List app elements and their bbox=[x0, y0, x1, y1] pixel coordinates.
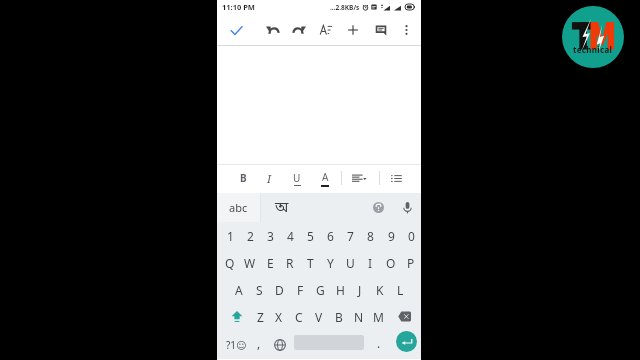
button[interactable]: P bbox=[401, 249, 421, 276]
button[interactable]: 7 bbox=[340, 222, 360, 249]
button[interactable]: Voice input bbox=[397, 193, 417, 222]
button[interactable]: 5 bbox=[300, 222, 320, 249]
staticText: Q bbox=[225, 255, 235, 271]
button[interactable]: 4 bbox=[280, 222, 300, 249]
staticText: 0 bbox=[408, 228, 415, 244]
button[interactable]: . bbox=[370, 330, 388, 359]
staticText: ?1☺ bbox=[226, 338, 247, 352]
button[interactable]: 0 bbox=[401, 222, 421, 249]
staticText: O bbox=[386, 255, 396, 271]
button[interactable]: U bbox=[340, 249, 360, 276]
button[interactable]: M bbox=[368, 303, 388, 330]
button[interactable]: O bbox=[381, 249, 401, 276]
staticText: J bbox=[358, 282, 362, 298]
staticText: technical bbox=[573, 44, 613, 55]
button[interactable]: T bbox=[300, 249, 320, 276]
button[interactable]: S bbox=[249, 276, 269, 303]
button[interactable]: 9 bbox=[381, 222, 401, 249]
staticText: V bbox=[315, 309, 323, 325]
button[interactable]: অ bbox=[261, 193, 391, 222]
button[interactable]: Done bbox=[225, 19, 247, 41]
button[interactable]: D bbox=[269, 276, 289, 303]
staticText: R bbox=[286, 255, 294, 271]
button[interactable]: A bbox=[229, 276, 249, 303]
staticText: E bbox=[267, 255, 274, 271]
staticText: 8 bbox=[367, 228, 374, 244]
button[interactable]: R bbox=[280, 249, 300, 276]
staticText: X bbox=[275, 309, 283, 325]
button[interactable]: Underline bbox=[287, 168, 307, 188]
button[interactable]: 3 bbox=[260, 222, 280, 249]
button[interactable]: Text colour bbox=[315, 168, 335, 188]
button[interactable]: Backspace bbox=[391, 303, 417, 330]
staticText: B bbox=[240, 171, 247, 185]
button[interactable]: G bbox=[310, 276, 330, 303]
button[interactable]: B bbox=[329, 303, 349, 330]
button[interactable] bbox=[292, 328, 366, 357]
staticText: K bbox=[376, 282, 384, 298]
button[interactable]: H bbox=[330, 276, 350, 303]
button[interactable]: Redo bbox=[288, 19, 310, 41]
button[interactable]: , bbox=[250, 330, 268, 359]
button[interactable]: 6 bbox=[320, 222, 340, 249]
staticText: I bbox=[368, 255, 373, 271]
staticText: অ bbox=[275, 198, 289, 218]
staticText: 1 bbox=[227, 228, 234, 244]
staticText: Y bbox=[327, 255, 334, 271]
button[interactable]: Change language bbox=[271, 330, 289, 359]
staticText: L bbox=[397, 282, 404, 298]
button[interactable]: 2 bbox=[240, 222, 260, 249]
staticText: 6 bbox=[327, 228, 334, 244]
button[interactable]: F bbox=[290, 276, 310, 303]
button[interactable]: N bbox=[349, 303, 369, 330]
button[interactable]: E bbox=[260, 249, 280, 276]
staticText: C bbox=[295, 309, 303, 325]
staticText: D bbox=[275, 282, 284, 298]
button[interactable]: W bbox=[240, 249, 260, 276]
staticText: 7 bbox=[347, 228, 354, 244]
button[interactable]: abc bbox=[217, 193, 260, 222]
button[interactable]: Bold bbox=[233, 168, 253, 188]
staticText: S bbox=[256, 282, 263, 298]
button[interactable]: Comment bbox=[370, 19, 392, 41]
button[interactable]: Formatting bbox=[315, 19, 337, 41]
staticText: M bbox=[373, 309, 384, 325]
button[interactable]: Shift bbox=[224, 303, 249, 330]
staticText: A bbox=[235, 282, 243, 298]
staticText: G bbox=[316, 282, 325, 298]
staticText: T bbox=[307, 255, 314, 271]
button[interactable]: List bbox=[386, 168, 406, 188]
staticText: ...2.8KB/s bbox=[330, 3, 360, 12]
button[interactable]: ?1☺ bbox=[221, 330, 251, 359]
button[interactable]: More options bbox=[395, 19, 417, 41]
staticText: I bbox=[267, 171, 272, 186]
button[interactable]: Italic bbox=[259, 168, 279, 188]
staticText: 11:10 PM bbox=[222, 2, 255, 12]
button[interactable]: Z bbox=[250, 303, 270, 330]
staticText: . bbox=[377, 335, 381, 351]
button[interactable]: Align bbox=[348, 168, 368, 188]
button[interactable]: Help bbox=[368, 193, 388, 222]
button[interactable]: Y bbox=[320, 249, 340, 276]
button[interactable]: Insert bbox=[342, 19, 364, 41]
button[interactable]: X bbox=[269, 303, 289, 330]
staticText: 9 bbox=[388, 228, 395, 244]
staticText: abc bbox=[229, 200, 248, 215]
button[interactable]: 1 bbox=[220, 222, 240, 249]
button[interactable]: J bbox=[350, 276, 370, 303]
button[interactable]: V bbox=[309, 303, 329, 330]
staticText: P bbox=[407, 255, 415, 271]
button[interactable]: 8 bbox=[360, 222, 380, 249]
staticText: F bbox=[297, 282, 304, 298]
button[interactable]: Enter bbox=[394, 327, 418, 356]
button[interactable]: L bbox=[390, 276, 410, 303]
button[interactable]: C bbox=[289, 303, 309, 330]
staticText: W bbox=[244, 255, 256, 271]
button[interactable]: Undo bbox=[261, 19, 283, 41]
button[interactable]: I bbox=[360, 249, 380, 276]
button[interactable]: K bbox=[370, 276, 390, 303]
staticText: B bbox=[335, 309, 343, 325]
button[interactable]: Q bbox=[220, 249, 240, 276]
staticText: Z bbox=[257, 309, 264, 325]
staticText: A bbox=[322, 170, 329, 184]
